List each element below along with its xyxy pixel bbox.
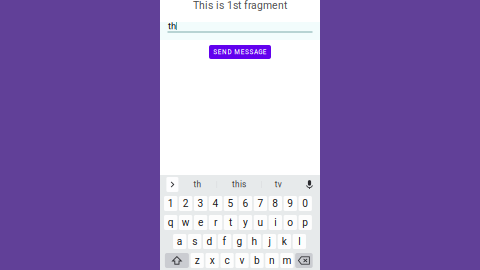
staticText: 5	[227, 198, 233, 209]
button[interactable]: Backspace	[295, 253, 313, 268]
staticText: n	[269, 255, 275, 266]
staticText: y	[243, 217, 248, 228]
staticText: z	[195, 255, 200, 266]
staticText: j	[268, 236, 270, 247]
staticText: 9	[287, 198, 293, 209]
staticText: f	[223, 236, 227, 247]
button[interactable]: m	[280, 253, 293, 268]
staticText: e	[198, 217, 203, 228]
staticText: 6	[242, 198, 248, 209]
staticText: q	[168, 217, 174, 228]
button[interactable]: 7	[254, 196, 267, 211]
button[interactable]: 1	[164, 196, 177, 211]
staticText: 4	[212, 198, 218, 209]
button[interactable]: j	[263, 234, 276, 249]
button[interactable]: 3	[194, 196, 207, 211]
staticText: m	[282, 255, 291, 266]
button[interactable]: a	[173, 234, 186, 249]
button[interactable]: s	[188, 234, 201, 249]
staticText: l	[298, 236, 300, 247]
button[interactable]: Shift	[165, 253, 189, 268]
button[interactable]: d	[203, 234, 216, 249]
button[interactable]: tv	[262, 175, 295, 194]
staticText: g	[236, 236, 242, 247]
staticText: th	[168, 20, 176, 31]
button[interactable]: n	[265, 253, 279, 268]
button[interactable]: 6	[239, 196, 252, 211]
button[interactable]: r	[209, 215, 222, 230]
button[interactable]: y	[239, 215, 252, 230]
button[interactable]: o	[284, 215, 297, 230]
staticText: u	[257, 217, 263, 228]
staticText: r	[214, 217, 217, 228]
button[interactable]: 2	[179, 196, 192, 211]
staticText: s	[192, 236, 197, 247]
staticText: p	[302, 217, 308, 228]
button[interactable]: e	[194, 215, 207, 230]
staticText: th	[193, 180, 201, 189]
button[interactable]: 8	[269, 196, 282, 211]
button[interactable]: l	[293, 234, 306, 249]
staticText: w	[182, 217, 190, 228]
staticText: a	[177, 236, 183, 247]
button[interactable]: t	[224, 215, 237, 230]
staticText: b	[254, 255, 260, 266]
staticText: 8	[272, 198, 278, 209]
staticText: h	[251, 236, 257, 247]
staticText: 0	[302, 198, 308, 209]
staticText: SEND MESSAGE	[213, 48, 267, 56]
button[interactable]: x	[205, 253, 219, 268]
button[interactable]: 0	[299, 196, 312, 211]
staticText: 1	[168, 198, 174, 209]
staticText: i	[274, 217, 276, 228]
staticText: tv	[275, 180, 282, 189]
staticText: This is 1st fragment	[193, 0, 287, 12]
staticText: x	[210, 255, 215, 266]
staticText: 3	[198, 198, 204, 209]
staticText: k	[282, 236, 287, 247]
button[interactable]: c	[220, 253, 234, 268]
button[interactable]: k	[278, 234, 291, 249]
button[interactable]: More suggestions	[166, 177, 178, 192]
button[interactable]: 5	[224, 196, 237, 211]
staticText: 2	[183, 198, 189, 209]
button[interactable]: 4	[209, 196, 222, 211]
staticText: d	[207, 236, 213, 247]
button[interactable]: p	[299, 215, 312, 230]
staticText: v	[239, 255, 244, 266]
button[interactable]: w	[179, 215, 192, 230]
staticText: c	[225, 255, 230, 266]
button[interactable]: q	[164, 215, 177, 230]
button[interactable]: v	[235, 253, 249, 268]
staticText: t	[229, 217, 232, 228]
staticText: this	[232, 180, 246, 189]
button[interactable]: u	[254, 215, 267, 230]
button[interactable]: th	[178, 175, 216, 194]
button[interactable]: i	[269, 215, 282, 230]
button[interactable]: 9	[284, 196, 297, 211]
staticText: o	[287, 217, 293, 228]
button[interactable]: SEND MESSAGE	[209, 45, 271, 59]
button[interactable]: f	[218, 234, 231, 249]
button[interactable]: Voice input	[305, 179, 314, 190]
button[interactable]: h	[248, 234, 261, 249]
button[interactable]: g	[233, 234, 246, 249]
button[interactable]: z	[190, 253, 204, 268]
button[interactable]: b	[250, 253, 264, 268]
button[interactable]: this	[217, 175, 261, 194]
staticText: 7	[257, 198, 263, 209]
